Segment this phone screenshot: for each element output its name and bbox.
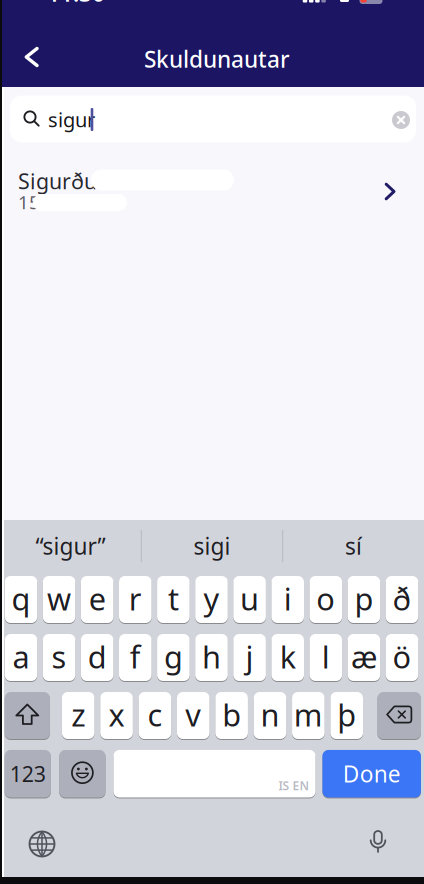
button[interactable]: ð bbox=[386, 575, 418, 623]
button[interactable]: Clear text bbox=[388, 107, 414, 133]
button[interactable]: t bbox=[157, 575, 190, 623]
staticText: Done bbox=[343, 759, 401, 789]
staticText: y bbox=[203, 578, 219, 619]
staticText: v bbox=[185, 694, 201, 735]
button[interactable]: o bbox=[309, 575, 342, 623]
staticText: IS EN bbox=[278, 777, 309, 793]
button[interactable]: e bbox=[81, 575, 113, 623]
button[interactable]: b bbox=[215, 691, 248, 739]
button[interactable]: þ bbox=[330, 691, 363, 739]
button[interactable]: i bbox=[271, 575, 304, 623]
button[interactable]: sigur bbox=[10, 95, 416, 142]
staticText: i bbox=[284, 578, 292, 619]
button[interactable]: “sigur” bbox=[6, 523, 136, 569]
staticText: l bbox=[322, 636, 330, 677]
staticText: Skuldunautar bbox=[144, 44, 290, 74]
staticText: r bbox=[129, 578, 142, 619]
staticText: sigur bbox=[48, 106, 95, 133]
button[interactable]: j bbox=[233, 633, 266, 681]
staticText: z bbox=[71, 694, 85, 735]
button[interactable]: n bbox=[254, 691, 286, 739]
button[interactable]: 123 bbox=[5, 749, 51, 798]
staticText: w bbox=[47, 578, 71, 619]
staticText: t bbox=[168, 578, 179, 619]
staticText: c bbox=[147, 694, 162, 735]
staticText: x bbox=[109, 694, 125, 735]
button[interactable]: a bbox=[5, 633, 37, 681]
staticText: h bbox=[202, 636, 221, 677]
button[interactable]: r bbox=[119, 575, 152, 623]
button[interactable]: Next keyboard bbox=[20, 822, 63, 865]
staticText: Sigurður bbox=[18, 167, 106, 195]
button[interactable]: sigi bbox=[147, 523, 277, 569]
button[interactable]: p bbox=[348, 575, 380, 623]
button[interactable]: d bbox=[81, 633, 113, 681]
staticText: f bbox=[130, 636, 141, 677]
staticText: g bbox=[164, 636, 183, 677]
button[interactable]: s bbox=[43, 633, 75, 681]
button[interactable]: f bbox=[119, 633, 152, 681]
staticText: p bbox=[354, 578, 373, 619]
button[interactable]: l bbox=[309, 633, 342, 681]
staticText: d bbox=[88, 636, 107, 677]
staticText: sí bbox=[345, 531, 362, 561]
button[interactable]: æ bbox=[348, 633, 380, 681]
button[interactable]: Shift bbox=[5, 691, 50, 739]
button[interactable]: c bbox=[139, 691, 171, 739]
staticText: ö bbox=[392, 636, 411, 677]
button[interactable]: k bbox=[271, 633, 304, 681]
staticText: n bbox=[260, 694, 279, 735]
button[interactable]: ö bbox=[386, 633, 418, 681]
staticText: e bbox=[89, 578, 106, 619]
staticText: j bbox=[246, 636, 254, 677]
button[interactable]: u bbox=[233, 575, 266, 623]
staticText: ð bbox=[392, 578, 411, 619]
staticText: þ bbox=[337, 694, 356, 735]
button[interactable]: Done bbox=[322, 749, 421, 798]
staticText: 15 bbox=[18, 190, 40, 214]
staticText: 123 bbox=[10, 759, 46, 788]
button[interactable]: Dictation bbox=[360, 821, 396, 864]
staticText: b bbox=[222, 694, 241, 735]
button[interactable]: Back bbox=[14, 36, 49, 77]
button[interactable]: z bbox=[62, 691, 94, 739]
button[interactable]: g bbox=[157, 633, 190, 681]
staticText: sigi bbox=[193, 531, 230, 561]
staticText: a bbox=[12, 636, 29, 677]
staticText: k bbox=[280, 636, 296, 677]
button[interactable]: v bbox=[177, 691, 210, 739]
staticText: s bbox=[52, 636, 67, 677]
button[interactable]: y bbox=[195, 575, 228, 623]
button[interactable]: Emoji bbox=[59, 749, 105, 798]
staticText: m bbox=[294, 694, 323, 735]
button[interactable]: x bbox=[100, 691, 133, 739]
staticText: o bbox=[316, 578, 335, 619]
staticText: 11:30 bbox=[47, 0, 105, 8]
button[interactable]: m bbox=[292, 691, 325, 739]
button[interactable]: Delete bbox=[377, 691, 421, 739]
staticText: q bbox=[11, 578, 30, 619]
button[interactable]: h bbox=[195, 633, 228, 681]
button[interactable]: Sigurður bbox=[0, 151, 424, 213]
button[interactable]: q bbox=[5, 575, 37, 623]
staticText: “sigur” bbox=[36, 531, 106, 561]
staticText: æ bbox=[351, 636, 377, 677]
button[interactable]: w bbox=[43, 575, 75, 623]
button[interactable]: Space bbox=[113, 749, 315, 798]
button[interactable]: sí bbox=[288, 523, 418, 569]
staticText: u bbox=[240, 578, 259, 619]
